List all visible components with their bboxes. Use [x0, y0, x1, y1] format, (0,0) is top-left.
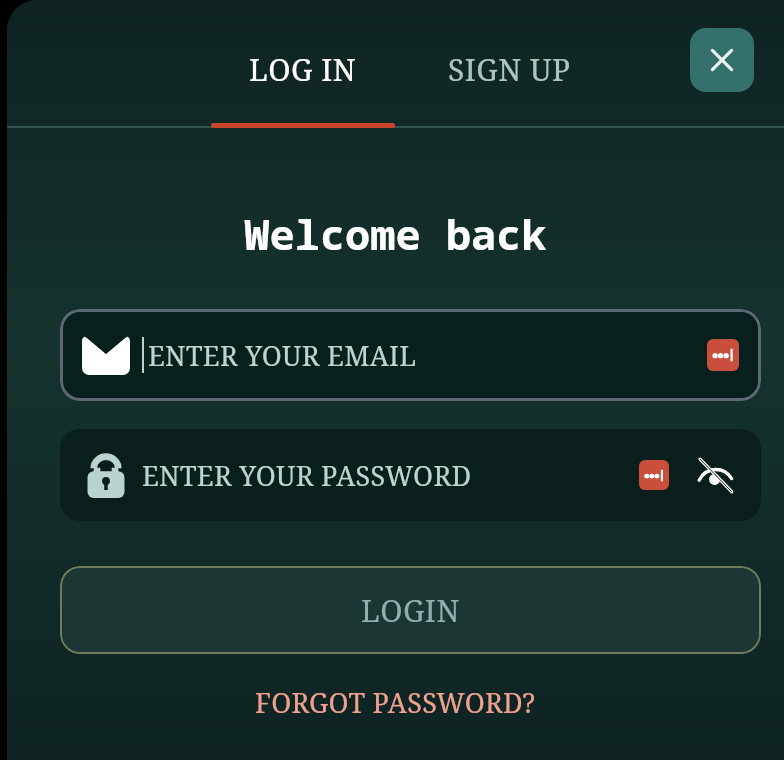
staticText: ENTER YOUR EMAIL: [148, 337, 707, 374]
button[interactable]: Show password: [691, 451, 739, 499]
button[interactable]: LOGIN: [60, 566, 761, 654]
button[interactable]: LOG IN: [203, 36, 403, 102]
button[interactable]: Password manager: [707, 339, 739, 371]
staticText: LOGIN: [361, 590, 460, 631]
button[interactable]: Password manager: [639, 460, 669, 490]
button[interactable]: ENTER YOUR EMAIL: [60, 309, 761, 401]
button[interactable]: FORGOT PASSWORD?: [243, 678, 548, 727]
button[interactable]: ENTER YOUR PASSWORD: [60, 429, 761, 521]
staticText: LOG IN: [249, 49, 357, 90]
button[interactable]: SIGN UP: [411, 36, 607, 102]
staticText: FORGOT PASSWORD?: [255, 684, 536, 721]
staticText: SIGN UP: [448, 49, 571, 90]
button[interactable]: Close: [690, 28, 754, 92]
staticText: ENTER YOUR PASSWORD: [142, 457, 639, 494]
staticText: Welcome back: [244, 205, 547, 262]
